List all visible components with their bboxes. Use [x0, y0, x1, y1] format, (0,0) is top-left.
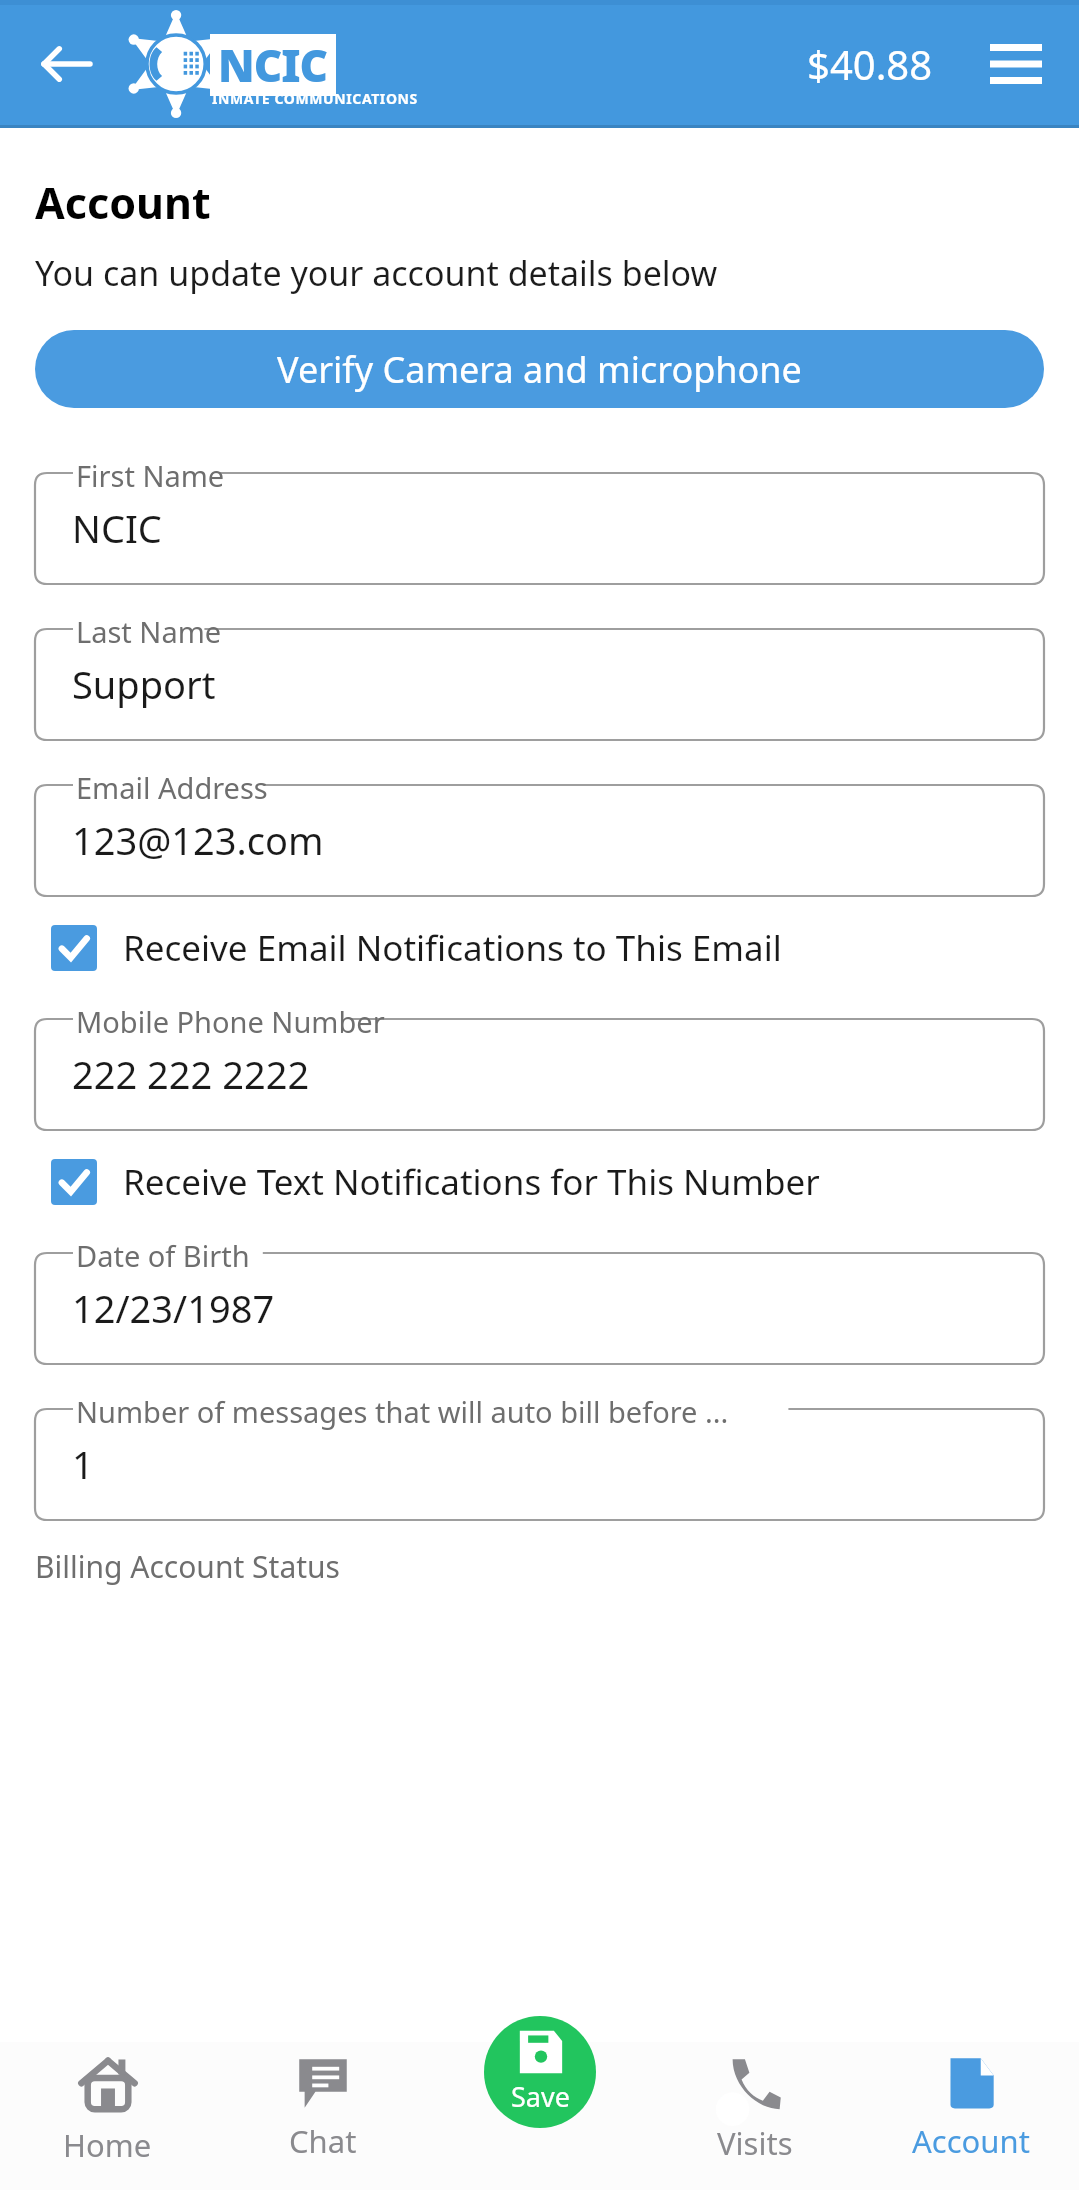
staticText: 1	[72, 1438, 94, 1490]
staticText: Support	[72, 658, 216, 710]
staticText: Home	[63, 2124, 152, 2166]
staticText: 222 222 2222	[72, 1048, 310, 1100]
staticText: First Name	[76, 456, 225, 495]
staticText: Email Address	[76, 768, 268, 807]
button[interactable]: Menu	[981, 29, 1051, 99]
staticText: 123@123.com	[72, 814, 324, 866]
staticText: Number of messages that will auto bill b…	[76, 1392, 729, 1431]
button[interactable]: Number of messages that will auto bill b…	[35, 1392, 1044, 1520]
button[interactable]: Email Address	[35, 768, 1044, 896]
button[interactable]: Receive Email Notifications to This Emai…	[35, 906, 1044, 990]
button[interactable]: Back	[28, 26, 104, 102]
staticText: 12/23/1987	[72, 1282, 275, 1334]
button[interactable]: Account	[863, 2042, 1079, 2190]
staticText: Visits	[717, 2122, 793, 2164]
button[interactable]: Date of Birth	[35, 1236, 1044, 1364]
staticText: Receive Text Notifications for This Numb…	[123, 1158, 820, 1206]
staticText: Chat	[289, 2120, 357, 2162]
staticText: Verify Camera and microphone	[277, 345, 802, 394]
staticText: Mobile Phone Number	[76, 1002, 385, 1041]
staticText: $40.88	[807, 37, 933, 91]
staticText: You can update your account details belo…	[35, 250, 718, 296]
staticText: Save	[511, 2078, 570, 2115]
staticText: Account	[35, 173, 211, 232]
button[interactable]: First Name	[35, 456, 1044, 584]
staticText: INMATE COMMUNICATIONS	[212, 89, 418, 108]
staticText: Receive Email Notifications to This Emai…	[123, 924, 782, 972]
button[interactable]: Home	[0, 2042, 215, 2190]
staticText: Last Name	[76, 612, 222, 651]
button[interactable]: Visits	[647, 2042, 863, 2190]
staticText: NCIC	[72, 502, 162, 554]
button[interactable]: Last Name	[35, 612, 1044, 740]
staticText: NCIC	[218, 35, 328, 95]
button[interactable]: Save	[484, 2016, 596, 2128]
button[interactable]: Receive Text Notifications for This Numb…	[35, 1140, 1044, 1224]
staticText: Account	[912, 2120, 1030, 2162]
button[interactable]: Mobile Phone Number	[35, 1002, 1044, 1130]
staticText: Billing Account Status	[35, 1546, 340, 1587]
staticText: Date of Birth	[76, 1236, 250, 1275]
button[interactable]: Verify Camera and microphone	[35, 330, 1044, 408]
button[interactable]: Chat	[215, 2042, 431, 2190]
